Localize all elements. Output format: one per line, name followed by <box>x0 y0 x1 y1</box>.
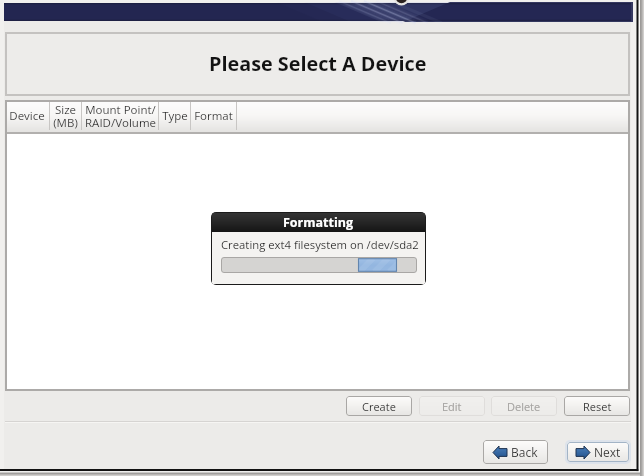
staticText: Size (MB) <box>53 102 78 131</box>
button[interactable]: Next <box>567 442 629 462</box>
staticText: Reset <box>583 399 612 414</box>
staticText: Device <box>9 108 45 124</box>
staticText: Back <box>511 444 538 460</box>
staticText: Formatting <box>283 214 354 231</box>
staticText: Delete <box>507 399 541 414</box>
button[interactable]: Create <box>346 396 412 416</box>
staticText: Mount Point/ RAID/Volume <box>85 102 156 131</box>
staticText: Format <box>194 108 233 124</box>
staticText: Create <box>362 399 396 414</box>
staticText: Creating ext4 filesystem on /dev/sda2 <box>221 237 419 252</box>
button[interactable]: Reset <box>564 396 630 416</box>
staticText: Type <box>162 108 188 124</box>
button[interactable]: Edit <box>419 396 485 416</box>
button[interactable]: Delete <box>491 396 557 416</box>
button[interactable]: Back <box>483 440 548 464</box>
staticText: Edit <box>442 399 462 414</box>
staticText: Next <box>594 444 621 460</box>
staticText: Please Select A Device <box>209 50 427 77</box>
